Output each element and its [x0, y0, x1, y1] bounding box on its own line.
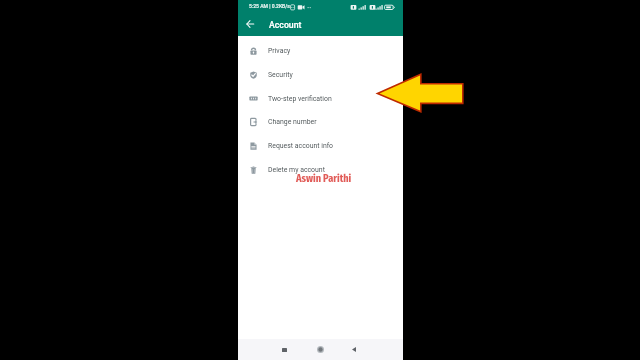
staticText: Two-step verification	[268, 95, 332, 103]
staticText: Security	[268, 71, 293, 79]
staticText: Change number	[268, 118, 317, 126]
staticText: Aswin Parithi	[296, 172, 352, 185]
button[interactable]: Back	[242, 12, 258, 35]
button[interactable]: Delete my account	[238, 158, 403, 182]
button[interactable]: Recent apps	[276, 339, 293, 360]
staticText: Privacy	[268, 47, 291, 55]
button[interactable]: Change number	[238, 110, 403, 134]
button[interactable]: Security	[238, 63, 403, 87]
button[interactable]: Home	[312, 339, 329, 360]
staticText: Request account info	[268, 142, 334, 150]
button[interactable]: Back	[345, 339, 362, 360]
button[interactable]: Privacy	[238, 39, 403, 63]
button[interactable]: Request account info	[238, 134, 403, 158]
staticText: 5:25 AM | 0.2KB/s	[249, 3, 290, 9]
staticText: Delete my account	[268, 166, 325, 174]
button[interactable]: Two-step verification	[238, 87, 403, 111]
staticText: Account	[269, 20, 302, 30]
